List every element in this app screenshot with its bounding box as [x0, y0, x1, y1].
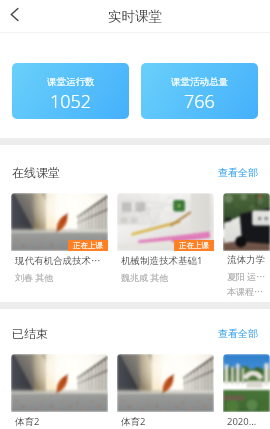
staticText: 766 — [184, 89, 215, 114]
staticText: 实时课堂 — [108, 8, 162, 25]
staticText: 课堂活动总量 — [171, 76, 228, 88]
button[interactable]: 正在上课 — [117, 193, 214, 285]
staticText: 在线课堂 — [12, 165, 60, 180]
staticText: 本课程面向... — [227, 286, 266, 297]
staticText: 2020年中国 — [227, 415, 266, 428]
staticText: 查看全部 — [218, 166, 258, 179]
staticText: 夏阳 运载工... — [227, 270, 266, 282]
staticText: 体育2 — [15, 415, 40, 428]
button[interactable]: 体育2 — [117, 354, 214, 429]
staticText: 魏兆咸 其他 — [121, 271, 169, 283]
staticText: 课堂运行数 — [47, 76, 95, 88]
staticText: 现代有机合成技术与... — [15, 254, 104, 267]
staticText: 查看全部 — [218, 327, 258, 340]
staticText: 已结束 — [12, 326, 48, 341]
button[interactable]: Back — [2, 1, 28, 27]
button[interactable]: 课堂活动总量 — [141, 63, 258, 119]
button[interactable]: 流体力学 — [223, 193, 270, 299]
staticText: 正在上课 — [179, 241, 209, 250]
staticText: 正在上课 — [73, 241, 103, 250]
staticText: 1052 — [50, 89, 92, 114]
button[interactable]: 体育2 — [11, 354, 108, 429]
staticText: 刘春 其他 — [15, 271, 54, 283]
staticText: 体育2 — [121, 415, 146, 428]
button[interactable]: 正在上课 — [11, 193, 108, 285]
button[interactable]: 2020年中国 — [223, 354, 270, 429]
button[interactable]: 查看全部 — [218, 327, 258, 340]
staticText: 流体力学 — [227, 254, 265, 266]
button[interactable]: 课堂运行数 — [12, 63, 129, 119]
button[interactable]: 查看全部 — [218, 166, 258, 179]
staticText: 机械制造技术基础1 — [121, 254, 203, 267]
